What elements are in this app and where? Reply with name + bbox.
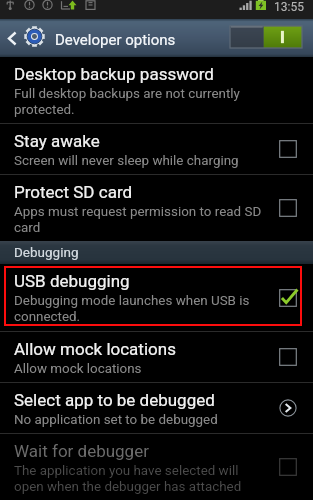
- button[interactable]: Allow mock locations: [0, 332, 313, 382]
- button[interactable]: Protect SD card: [0, 175, 313, 241]
- button[interactable]: Toggle setting: [273, 283, 303, 313]
- staticText: Full desktop backups are not currently p…: [14, 86, 240, 118]
- button[interactable]: Select app to be debugged: [273, 393, 303, 423]
- button[interactable]: USB debugging: [0, 264, 313, 331]
- staticText: The application you have selected will o…: [14, 463, 242, 495]
- staticText: Wait for debugger: [14, 441, 149, 461]
- staticText: Select app to be debugged: [14, 390, 215, 410]
- staticText: Developer options: [55, 31, 176, 49]
- staticText: Allow mock locations: [14, 361, 142, 377]
- button[interactable]: Desktop backup password: [0, 57, 313, 123]
- button[interactable]: Toggle setting: [273, 342, 303, 372]
- staticText: Debugging: [14, 244, 79, 260]
- staticText: Apps must request permission to read SD …: [14, 204, 262, 236]
- button[interactable]: Toggle setting: [273, 452, 303, 482]
- staticText: Allow mock locations: [14, 339, 176, 359]
- staticText: Protect SD card: [14, 182, 133, 202]
- staticText: Stay awake: [14, 131, 100, 151]
- staticText: Debugging mode launches when USB is conn…: [14, 293, 250, 325]
- staticText: USB debugging: [14, 271, 130, 291]
- button[interactable]: Navigate up: [2, 19, 22, 57]
- button[interactable]: Developer options on off switch: [230, 26, 302, 48]
- staticText: No application set to be debugged: [14, 412, 218, 428]
- button[interactable]: Stay awake: [0, 124, 313, 174]
- button[interactable]: Wait for debugger: [0, 434, 313, 500]
- button[interactable]: Select app to be debugged: [0, 383, 313, 433]
- staticText: 13:55: [274, 0, 304, 14]
- button[interactable]: Toggle setting: [273, 134, 303, 164]
- button[interactable]: Toggle setting: [273, 193, 303, 223]
- staticText: Desktop backup password: [14, 64, 214, 84]
- staticText: Screen will never sleep while charging: [14, 153, 239, 169]
